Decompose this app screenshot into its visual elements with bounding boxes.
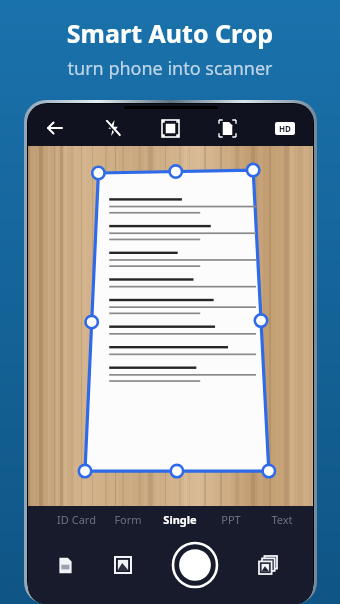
staticText: HD <box>279 123 291 134</box>
staticText: Smart Auto Crop <box>0 16 340 50</box>
button[interactable]: Documents <box>50 550 80 580</box>
button[interactable]: Back <box>42 115 68 141</box>
staticText: turn phone into scanner <box>0 56 340 81</box>
button[interactable]: ID Card <box>50 506 102 532</box>
button[interactable]: Capture <box>170 540 220 590</box>
button[interactable]: HD quality <box>271 114 299 142</box>
staticText: PPT <box>221 512 241 527</box>
button[interactable]: PPT <box>205 506 256 532</box>
staticText: ID Card <box>57 512 96 527</box>
button[interactable]: Page detect <box>214 115 240 141</box>
staticText: Form <box>114 512 142 527</box>
staticText: Single <box>163 512 197 527</box>
button[interactable]: Text <box>256 506 307 532</box>
button[interactable]: Single <box>154 506 205 532</box>
button[interactable]: Batch photos <box>253 550 283 580</box>
button[interactable]: Gallery <box>108 550 138 580</box>
button[interactable]: Flash off <box>100 115 126 141</box>
button[interactable]: Auto crop <box>157 115 183 141</box>
button[interactable]: Form <box>102 506 154 532</box>
staticText: Text <box>271 512 293 527</box>
